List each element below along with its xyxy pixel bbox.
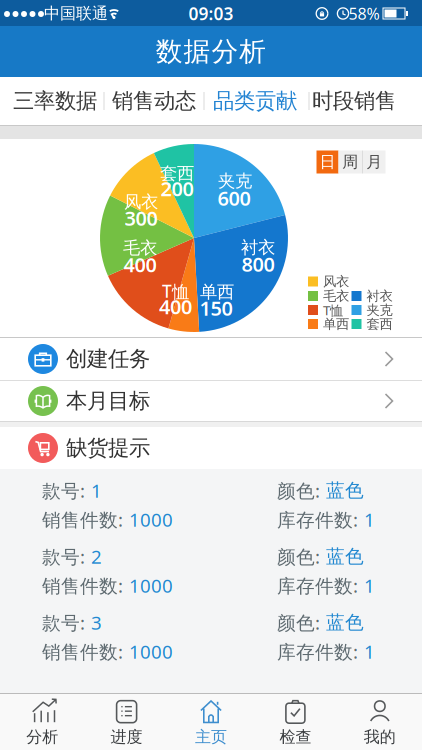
staticText: 库存件数: (277, 639, 358, 664)
staticText: 套西 (366, 316, 392, 332)
staticText: 150 (199, 295, 232, 321)
staticText: 蓝色 (326, 545, 364, 568)
staticText: 1000 (129, 507, 173, 532)
button[interactable]: 进度 (84, 697, 169, 747)
staticText: 销售件数: (42, 573, 123, 598)
button[interactable]: 销售动态 (107, 77, 201, 125)
staticText: 创建任务 (66, 346, 150, 372)
staticText: 月 (366, 152, 382, 172)
staticText: 周 (342, 152, 358, 172)
staticText: 我的 (364, 727, 396, 747)
staticText: 09:03 (188, 2, 233, 25)
staticText: 1000 (129, 639, 173, 664)
staticText: 主页 (195, 727, 227, 747)
button[interactable]: 缺货提示 (0, 427, 422, 469)
staticText: 300 (124, 205, 157, 231)
staticText: T恤 (162, 279, 189, 302)
staticText: 600 (217, 185, 250, 211)
staticText: 日 (319, 152, 335, 172)
staticText: 1000 (129, 573, 173, 598)
staticText: 款号: (42, 610, 85, 635)
staticText: 进度 (111, 727, 143, 747)
staticText: 单西 (200, 281, 234, 303)
staticText: 销售件数: (42, 639, 123, 664)
staticText: 库存件数: (277, 573, 358, 598)
staticText: 200 (160, 175, 193, 202)
button[interactable]: 本月目标 (0, 381, 422, 421)
staticText: 58% (348, 3, 379, 24)
staticText: 数据分析 (156, 35, 266, 68)
staticText: 风衣 (323, 273, 349, 290)
staticText: 分析 (26, 727, 58, 747)
staticText: 中国联通 (44, 4, 108, 23)
staticText: 衬衣 (366, 288, 392, 304)
staticText: 颜色: (277, 478, 320, 503)
staticText: 单西 (323, 316, 349, 332)
staticText: 400 (123, 251, 156, 278)
staticText: 3 (91, 610, 102, 635)
staticText: 销售动态 (112, 88, 196, 114)
staticText: 夹克 (366, 302, 392, 318)
staticText: 套西 (160, 163, 194, 184)
staticText: 夹克 (218, 170, 252, 192)
staticText: 衬衣 (241, 237, 275, 258)
staticText: 2 (91, 544, 102, 569)
button[interactable]: 时段销售 (307, 77, 401, 125)
button[interactable]: 三率数据 (8, 77, 102, 125)
staticText: 颜色: (277, 544, 320, 569)
staticText: 时段销售 (312, 88, 396, 114)
button[interactable]: 月 (363, 150, 385, 173)
staticText: 本月目标 (66, 388, 150, 414)
button[interactable]: 周 (338, 150, 362, 173)
staticText: 蓝色 (326, 479, 364, 502)
button[interactable]: 日 (316, 150, 338, 173)
staticText: 毛衣 (123, 237, 157, 259)
staticText: 三率数据 (13, 88, 97, 114)
staticText: 缺货提示 (66, 435, 150, 461)
staticText: 款号: (42, 544, 85, 569)
staticText: 毛衣 (323, 288, 349, 304)
button[interactable]: 分析 (0, 697, 84, 747)
staticText: 颜色: (277, 610, 320, 635)
staticText: 品类贡献 (213, 88, 297, 114)
staticText: 1 (364, 639, 375, 664)
staticText: 1 (91, 478, 102, 503)
staticText: 销售件数: (42, 507, 123, 532)
staticText: T恤 (323, 301, 343, 319)
button[interactable]: 品类贡献 (208, 77, 302, 125)
button[interactable]: 检查 (253, 697, 338, 747)
button[interactable]: 主页 (169, 697, 253, 747)
staticText: 400 (159, 293, 192, 320)
staticText: 蓝色 (326, 611, 364, 634)
staticText: 款号: (42, 478, 85, 503)
staticText: 检查 (279, 727, 311, 747)
staticText: 风衣 (124, 191, 158, 213)
staticText: 库存件数: (277, 507, 358, 532)
button[interactable]: 创建任务 (0, 338, 422, 380)
staticText: 800 (241, 251, 274, 277)
staticText: 1 (364, 507, 375, 532)
staticText: 1 (364, 573, 375, 598)
button[interactable]: 我的 (338, 697, 422, 747)
